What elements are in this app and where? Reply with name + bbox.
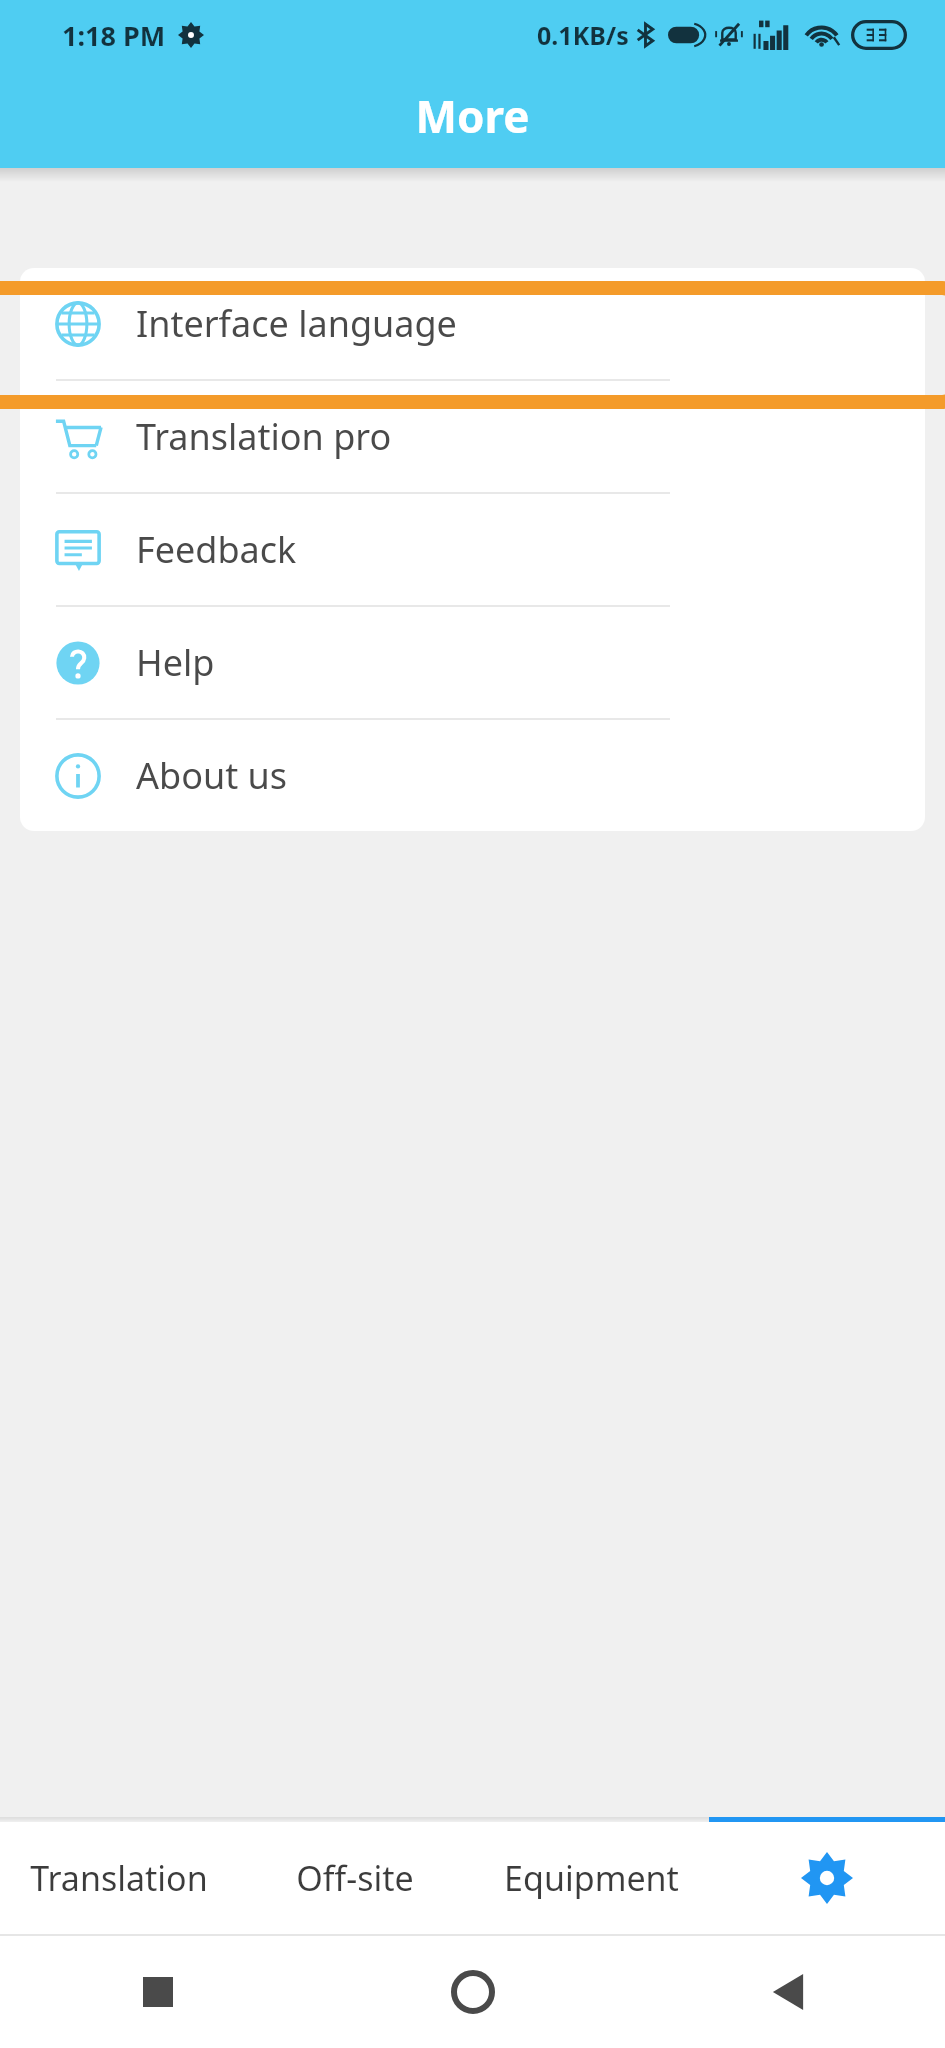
staticText: Help (136, 638, 215, 687)
staticText: About us (136, 751, 288, 800)
button[interactable]: Recents (0, 1936, 315, 2048)
button[interactable]: Translation (0, 1822, 237, 1934)
staticText: Feedback (136, 525, 297, 574)
button[interactable]: Off-site (237, 1822, 473, 1934)
button[interactable]: Home (315, 1936, 630, 2048)
staticText: 0.1KB/s (537, 18, 629, 52)
button[interactable]: Interface language (20, 268, 925, 379)
staticText: More (415, 86, 530, 146)
staticText: Equipment (504, 1855, 679, 1901)
staticText: Translation pro (136, 412, 392, 461)
button[interactable]: Translation pro (20, 381, 925, 492)
staticText: Off-site (296, 1855, 414, 1901)
button[interactable]: Settings (709, 1822, 945, 1934)
button[interactable]: Help (20, 607, 925, 718)
button[interactable]: Feedback (20, 494, 925, 605)
button[interactable]: Back (630, 1936, 945, 2048)
staticText: Translation (30, 1855, 208, 1901)
button[interactable]: About us (20, 720, 925, 831)
staticText: 1:18 PM (62, 17, 166, 54)
button[interactable]: Equipment (473, 1822, 709, 1934)
staticText: Interface language (136, 299, 457, 348)
